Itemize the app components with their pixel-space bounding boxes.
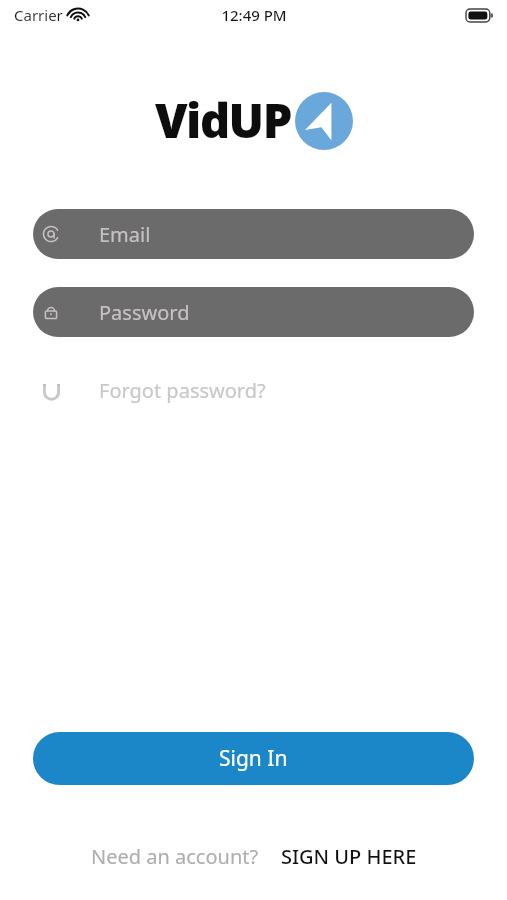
- staticText: Sign In: [219, 744, 288, 773]
- staticText: Forgot password?: [99, 377, 266, 404]
- button[interactable]: SIGN UP HERE: [281, 843, 417, 870]
- staticText: Carrier: [14, 5, 63, 25]
- button[interactable]: Forgot password?: [33, 373, 266, 407]
- button[interactable]: Password field: [33, 287, 474, 337]
- staticText: 12:49 PM: [221, 5, 287, 25]
- staticText: SIGN UP HERE: [281, 843, 417, 870]
- button[interactable]: Sign In: [33, 732, 474, 785]
- staticText: VidUP: [155, 88, 291, 152]
- staticText: Password: [99, 299, 190, 326]
- staticText: Need an account?: [91, 843, 259, 870]
- button[interactable]: Email field: [33, 209, 474, 259]
- staticText: Email: [99, 221, 151, 248]
